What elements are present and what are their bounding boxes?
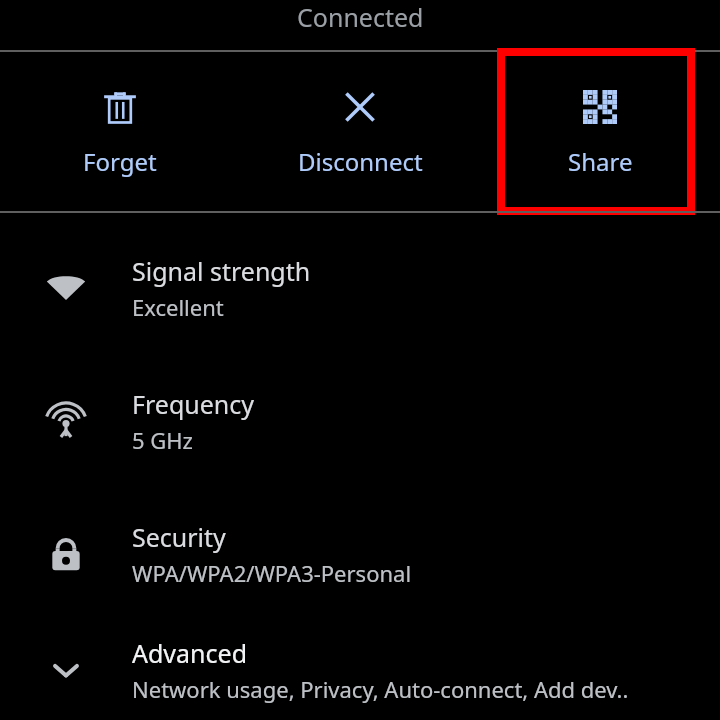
button[interactable]: Security	[0, 487, 720, 620]
button[interactable]: Forget	[0, 52, 240, 178]
staticText: Advanced	[132, 636, 248, 670]
staticText: Security	[132, 520, 226, 554]
staticText: Forget	[83, 145, 157, 178]
staticText: Excellent	[132, 292, 224, 322]
staticText: Share	[568, 145, 633, 178]
other: Forget	[102, 89, 138, 125]
staticText: WPA/WPA2/WPA3-Personal	[132, 558, 412, 588]
staticText: Connected	[297, 0, 424, 34]
button[interactable]: Signal strength	[0, 222, 720, 354]
staticText: Signal strength	[132, 254, 311, 288]
other: Disconnect	[343, 90, 377, 124]
button[interactable]: Disconnect	[240, 52, 480, 178]
staticText: 5 GHz	[132, 425, 193, 455]
button[interactable]: Advanced	[0, 620, 720, 720]
button[interactable]: Frequency	[0, 354, 720, 487]
staticText: Disconnect	[298, 145, 423, 178]
other: Share	[583, 90, 617, 124]
staticText: Frequency	[132, 387, 255, 421]
staticText: Network usage, Privacy, Auto-connect, Ad…	[132, 674, 629, 704]
button[interactable]: Share	[480, 52, 720, 178]
